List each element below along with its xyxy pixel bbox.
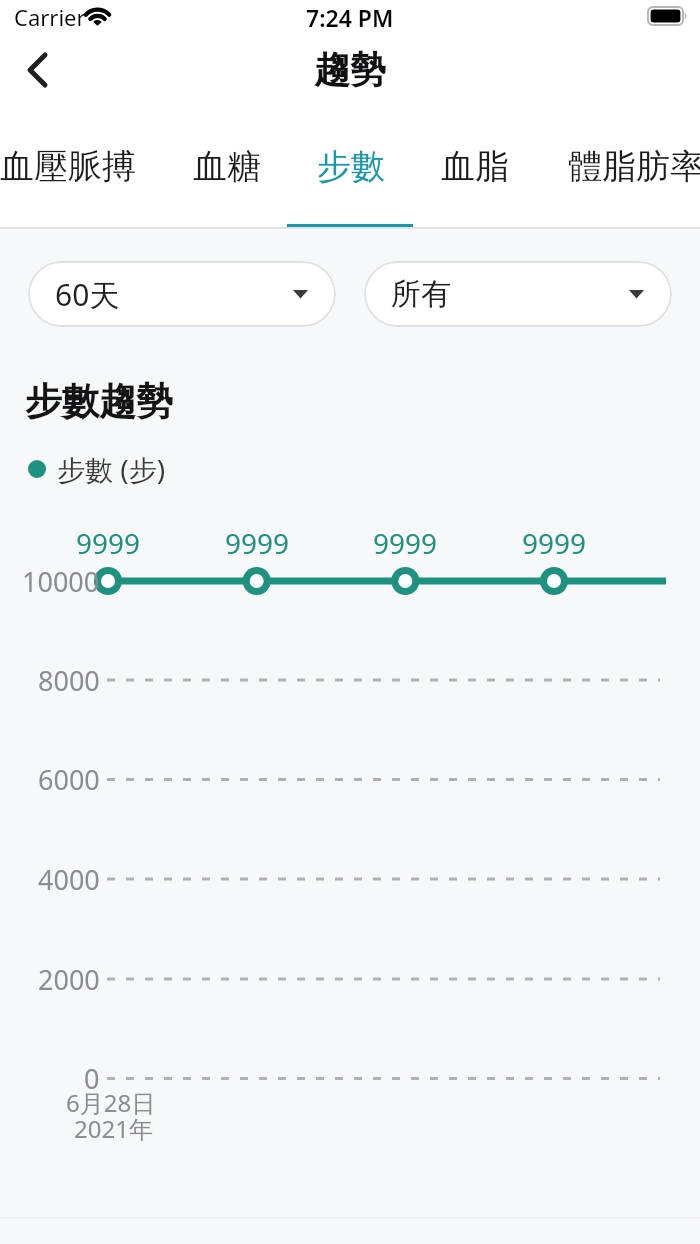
- staticText: 9999: [225, 524, 290, 562]
- button[interactable]: 血脂: [440, 131, 510, 201]
- staticText: 8000: [38, 662, 100, 699]
- button[interactable]: 所有: [364, 261, 672, 327]
- staticText: 4000: [38, 861, 100, 898]
- button[interactable]: 血糖: [191, 131, 263, 201]
- staticText: 趨勢: [314, 47, 386, 92]
- staticText: 血糖: [193, 145, 261, 188]
- staticText: 9999: [373, 524, 438, 562]
- staticText: 體脂肪率: [568, 145, 700, 188]
- staticText: 9999: [522, 524, 587, 562]
- staticText: 步數趨勢: [25, 378, 173, 425]
- staticText: 60天: [55, 274, 120, 315]
- staticText: 步數 (步): [57, 450, 166, 488]
- button[interactable]: 60天: [28, 261, 336, 327]
- staticText: 血脂: [441, 145, 509, 188]
- staticText: 2000: [38, 961, 100, 998]
- staticText: 步數: [317, 145, 385, 188]
- staticText: 6000: [38, 761, 100, 798]
- button[interactable]: 體脂肪率: [566, 131, 700, 201]
- button[interactable]: [16, 50, 60, 90]
- staticText: Carrier: [14, 2, 86, 32]
- staticText: 6月28日: [66, 1086, 156, 1119]
- staticText: 9999: [76, 524, 141, 562]
- staticText: 7:24 PM: [306, 2, 394, 33]
- staticText: 10000: [22, 563, 100, 600]
- button[interactable]: 血壓脈搏: [0, 131, 138, 201]
- staticText: 血壓脈搏: [0, 145, 136, 188]
- staticText: 2021年: [74, 1112, 153, 1145]
- button[interactable]: 步數: [316, 131, 386, 201]
- staticText: 所有: [391, 275, 451, 313]
- staticText: 0: [84, 1060, 100, 1097]
